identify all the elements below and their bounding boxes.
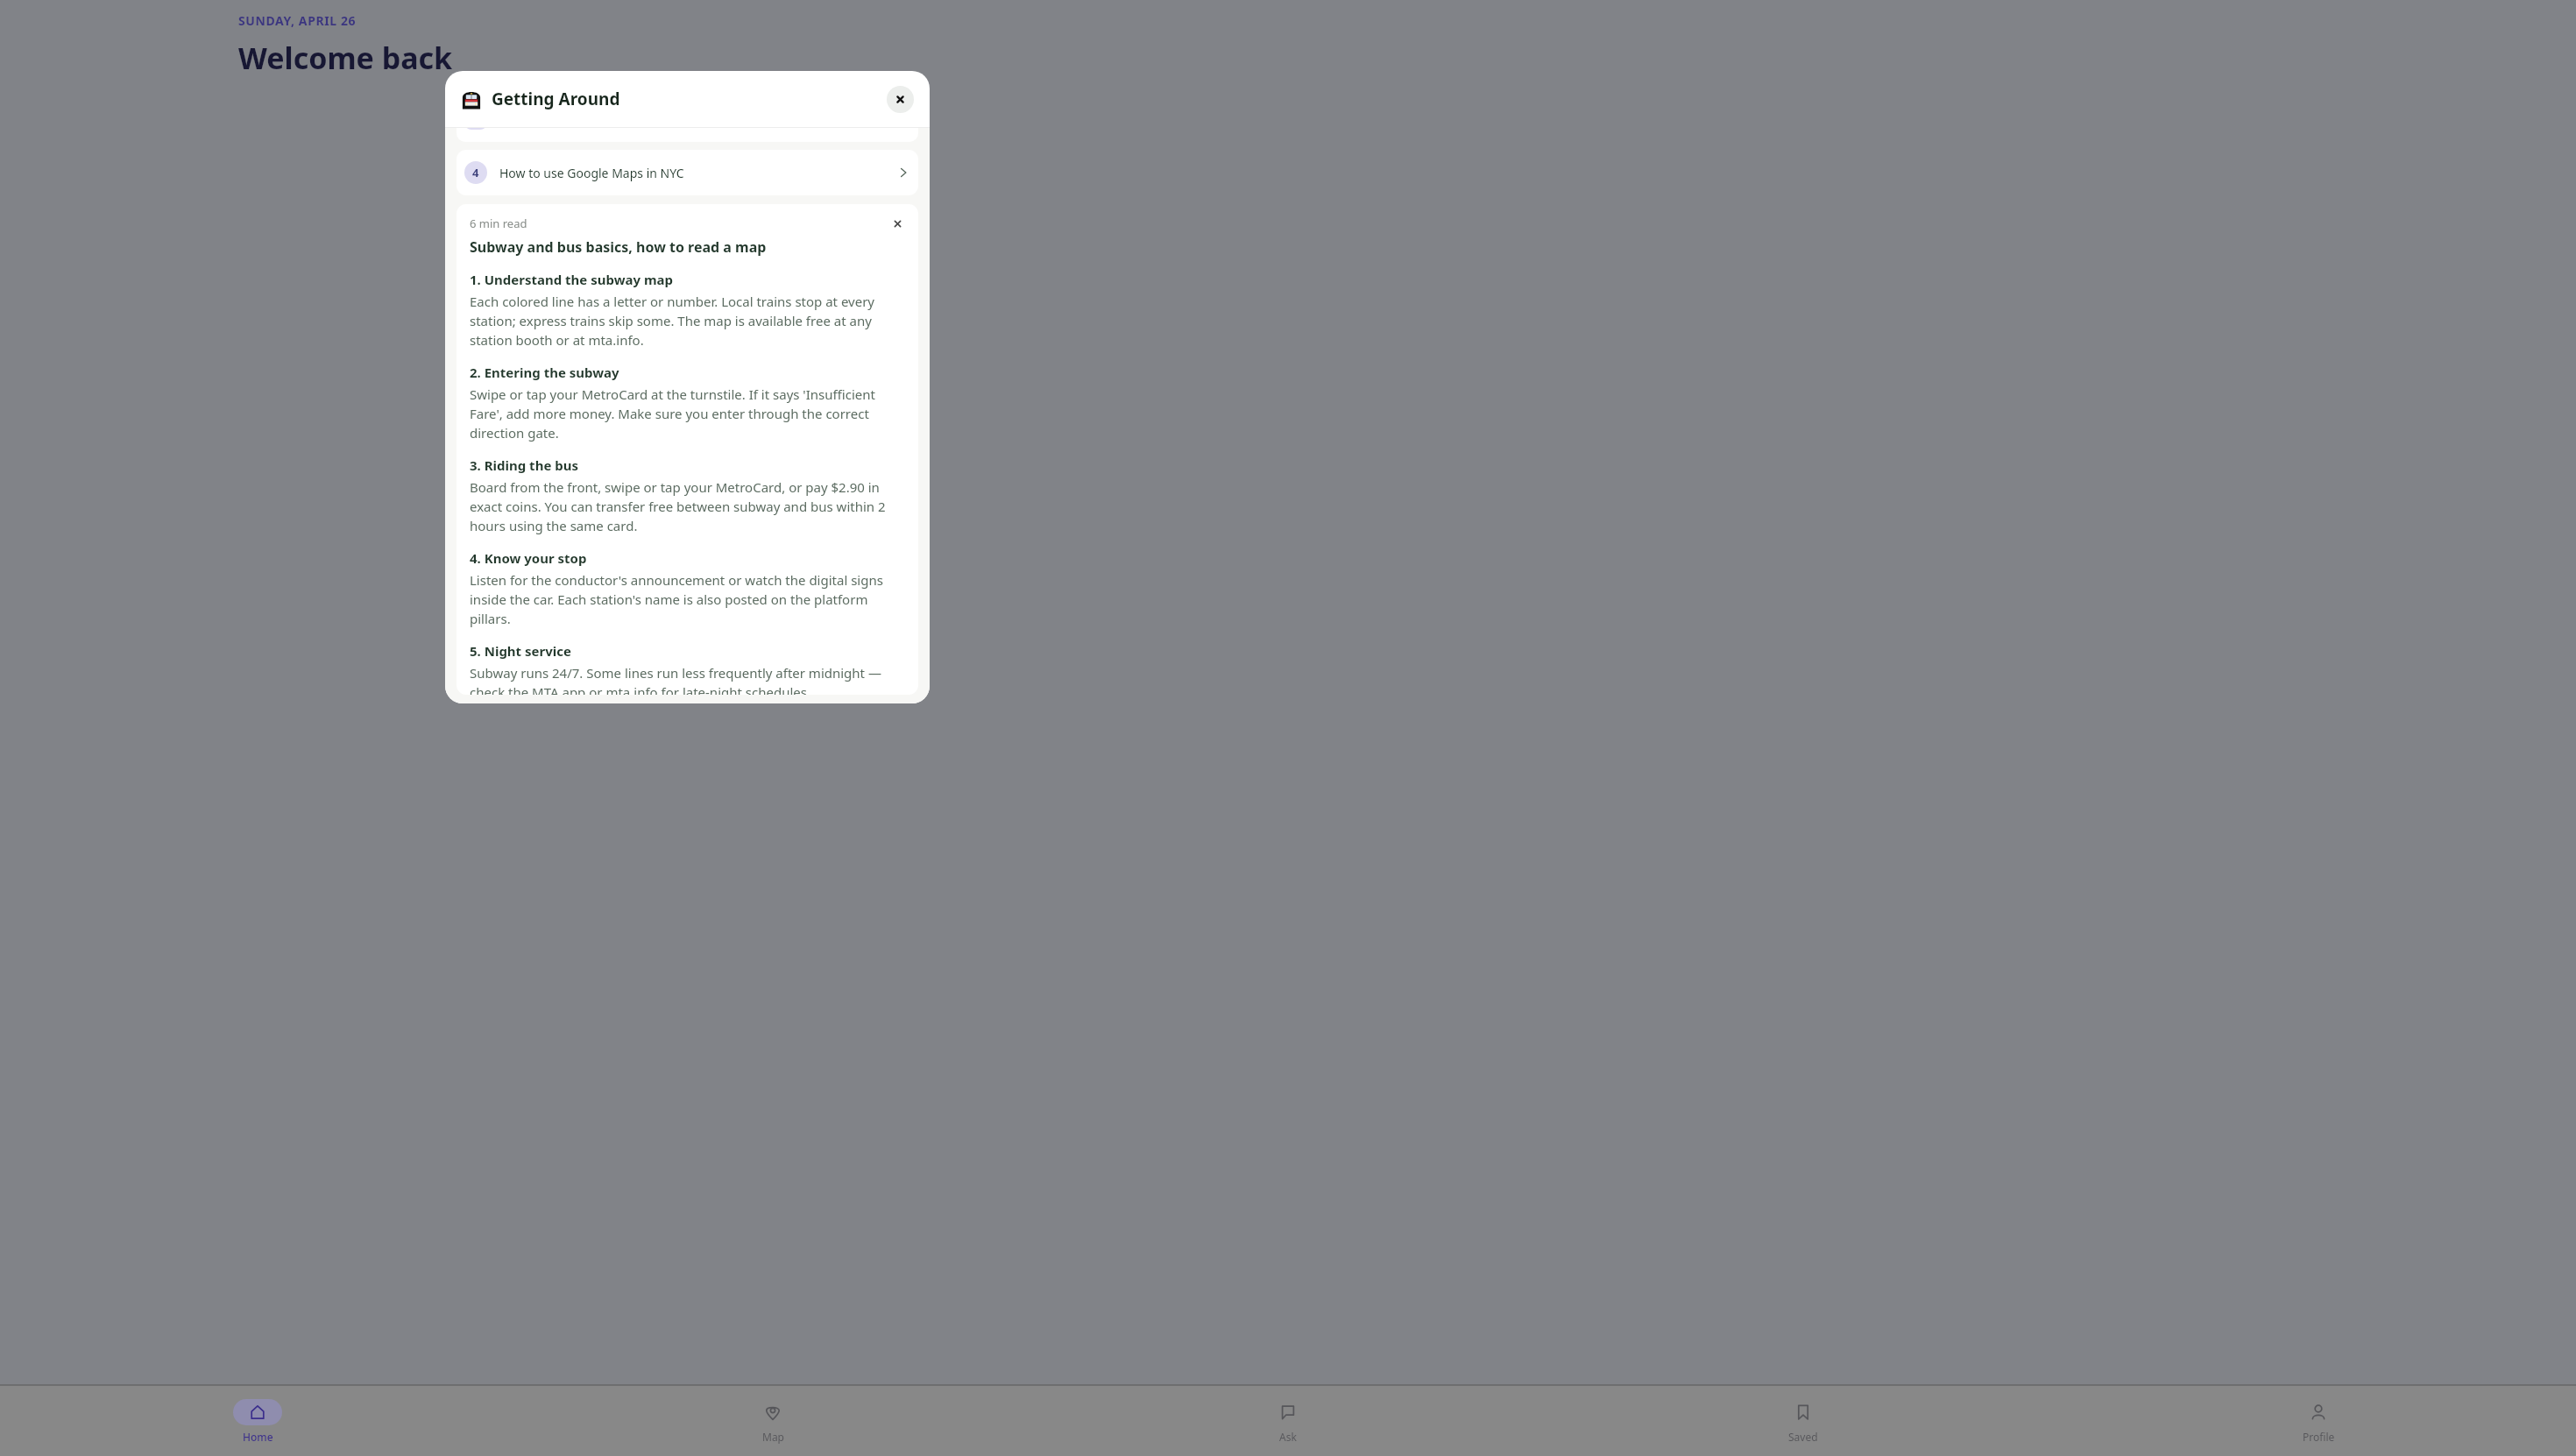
button[interactable]: Saved xyxy=(1546,1394,2061,1449)
staticText: Profile xyxy=(2303,1430,2335,1444)
staticText: 6 min read xyxy=(470,216,527,231)
other: Saved xyxy=(1794,1403,1812,1421)
staticText: Board from the front, swipe or tap your … xyxy=(470,478,905,535)
staticText: Getting Around xyxy=(492,88,620,110)
staticText: Ask xyxy=(1279,1430,1297,1444)
other: Profile xyxy=(2310,1403,2327,1421)
staticText: 2. Entering the subway xyxy=(470,364,619,381)
staticText: SUNDAY, APRIL 26 xyxy=(238,12,357,29)
staticText: Subway runs 24/7. Some lines run less fr… xyxy=(470,664,905,695)
staticText: How to use Google Maps in NYC xyxy=(499,165,684,181)
other: Ask xyxy=(1279,1403,1297,1421)
staticText: Listen for the conductor's announcement … xyxy=(470,571,905,628)
button[interactable]: Close xyxy=(887,86,914,113)
staticText: 5. Night service xyxy=(470,642,571,660)
staticText: Map xyxy=(762,1430,784,1444)
button[interactable]: 4 xyxy=(456,150,918,195)
staticText: Saved xyxy=(1788,1430,1818,1444)
staticText: Subway and bus basics, how to read a map xyxy=(470,237,767,257)
staticText: 4. Know your stop xyxy=(470,549,587,567)
staticText: Welcome back xyxy=(238,38,453,78)
other: Home xyxy=(249,1403,266,1421)
staticText: Swipe or tap your MetroCard at the turns… xyxy=(470,385,905,442)
other: Map xyxy=(764,1403,782,1421)
button[interactable]: Close article xyxy=(889,216,905,231)
staticText: 3. Riding the bus xyxy=(470,456,578,474)
button[interactable]: Home xyxy=(0,1394,515,1449)
staticText: 4 xyxy=(472,165,479,180)
staticText: 1. Understand the subway map xyxy=(470,271,674,288)
staticText: Home xyxy=(243,1430,273,1444)
staticText: Each colored line has a letter or number… xyxy=(470,293,905,350)
